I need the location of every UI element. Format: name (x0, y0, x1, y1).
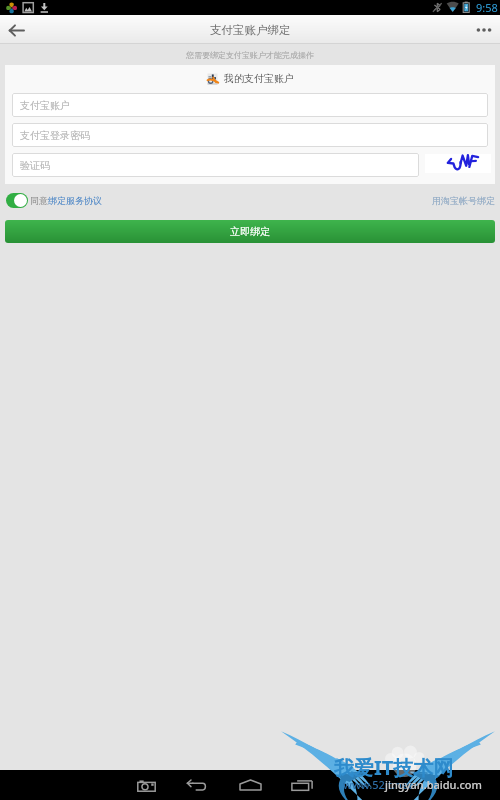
staticText: 9:58 (476, 0, 498, 15)
staticText: 支付宝账户 (20, 99, 70, 112)
button[interactable]: 支付宝登录密码 (12, 123, 488, 147)
button[interactable]: 支付宝账户 (12, 93, 488, 117)
button[interactable]: 同意绑定服务协议 (6, 193, 102, 208)
staticText: 我的支付宝账户 (224, 72, 294, 85)
button[interactable]: Home (235, 770, 265, 800)
staticText: 验证码 (20, 159, 50, 172)
staticText: 我爱IT技术网 (334, 754, 454, 781)
staticText: 支付宝登录密码 (20, 129, 90, 142)
button[interactable]: Back (182, 770, 212, 800)
button[interactable]: Camera (131, 770, 161, 800)
staticText: jingyan.baidu.com (385, 777, 482, 792)
staticText: 支付宝账户绑定 (210, 23, 291, 37)
button[interactable]: 验证码 (12, 153, 419, 177)
staticText: 您需要绑定支付宝账户才能完成操作 (186, 50, 314, 60)
button[interactable]: 用淘宝帐号绑定 (432, 195, 495, 206)
button[interactable]: More options (471, 17, 497, 43)
staticText: www.52it.net (343, 777, 413, 792)
button[interactable]: Back (3, 17, 29, 43)
button[interactable]: Refresh captcha (425, 154, 491, 173)
button[interactable]: 立即绑定 (5, 220, 495, 243)
staticText: 同意绑定服务协议 (30, 195, 102, 206)
staticText: 立即绑定 (230, 225, 270, 238)
staticText: 用淘宝帐号绑定 (432, 195, 495, 206)
button[interactable]: Recent apps (287, 770, 317, 800)
